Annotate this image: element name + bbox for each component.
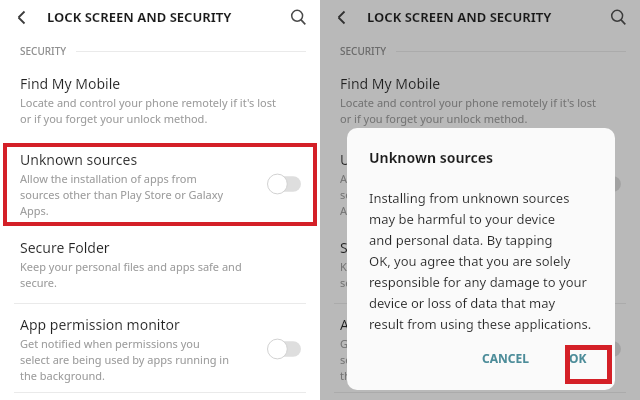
staticText: Allow the installation of apps from sour… [20,171,224,218]
staticText: App permission monitor [340,315,500,334]
staticText: CANCEL [482,350,529,366]
staticText: SECURITY [20,44,67,58]
button[interactable]: Back [325,1,357,33]
staticText: Unknown sources [340,150,458,169]
button[interactable]: Toggle [586,336,624,362]
button[interactable]: Find My Mobile [0,70,320,134]
staticText: Unknown sources [369,148,494,167]
staticText: LOCK SCREEN AND SECURITY [47,8,232,26]
staticText: Find My Mobile [340,74,441,93]
staticText: Unknown sources [20,150,138,169]
button[interactable]: Toggle [266,171,304,197]
button[interactable]: Secure Folder [0,236,320,296]
button[interactable]: CANCEL [474,342,537,374]
button[interactable]: App permission monitor [0,313,320,387]
staticText: Get notified when permissions you select… [340,336,549,383]
button[interactable]: Toggle [586,171,624,197]
staticText: Locate and control your phone remotely i… [20,95,276,126]
button[interactable]: Toggle [266,336,304,362]
staticText: Secure Folder [340,238,430,257]
staticText: Secure Folder [20,238,110,257]
button[interactable]: Search [602,1,634,33]
staticText: Locate and control your phone remotely i… [340,95,596,126]
staticText: Keep your personal files and apps safe a… [20,259,242,290]
staticText: App permission monitor [20,315,180,334]
staticText: Find My Mobile [20,74,121,93]
staticText: Keep your personal files and apps safe a… [340,259,562,290]
staticText: Installing from unknown sources may be h… [369,189,592,332]
button[interactable]: App permission monitor [320,313,640,387]
button[interactable]: OK [559,342,597,374]
staticText: SECURITY [340,44,387,58]
button[interactable]: Unknown sources [0,144,320,224]
staticText: Allow the installation of apps from sour… [340,171,544,218]
button[interactable]: Back [5,1,37,33]
button[interactable]: Secure Folder [320,236,640,296]
button[interactable]: Unknown sources [320,144,640,224]
staticText: OK [569,350,587,366]
staticText: Get notified when permissions you select… [20,336,229,383]
button[interactable]: Find My Mobile [320,70,640,134]
staticText: LOCK SCREEN AND SECURITY [367,8,552,26]
button[interactable]: Search [282,1,314,33]
